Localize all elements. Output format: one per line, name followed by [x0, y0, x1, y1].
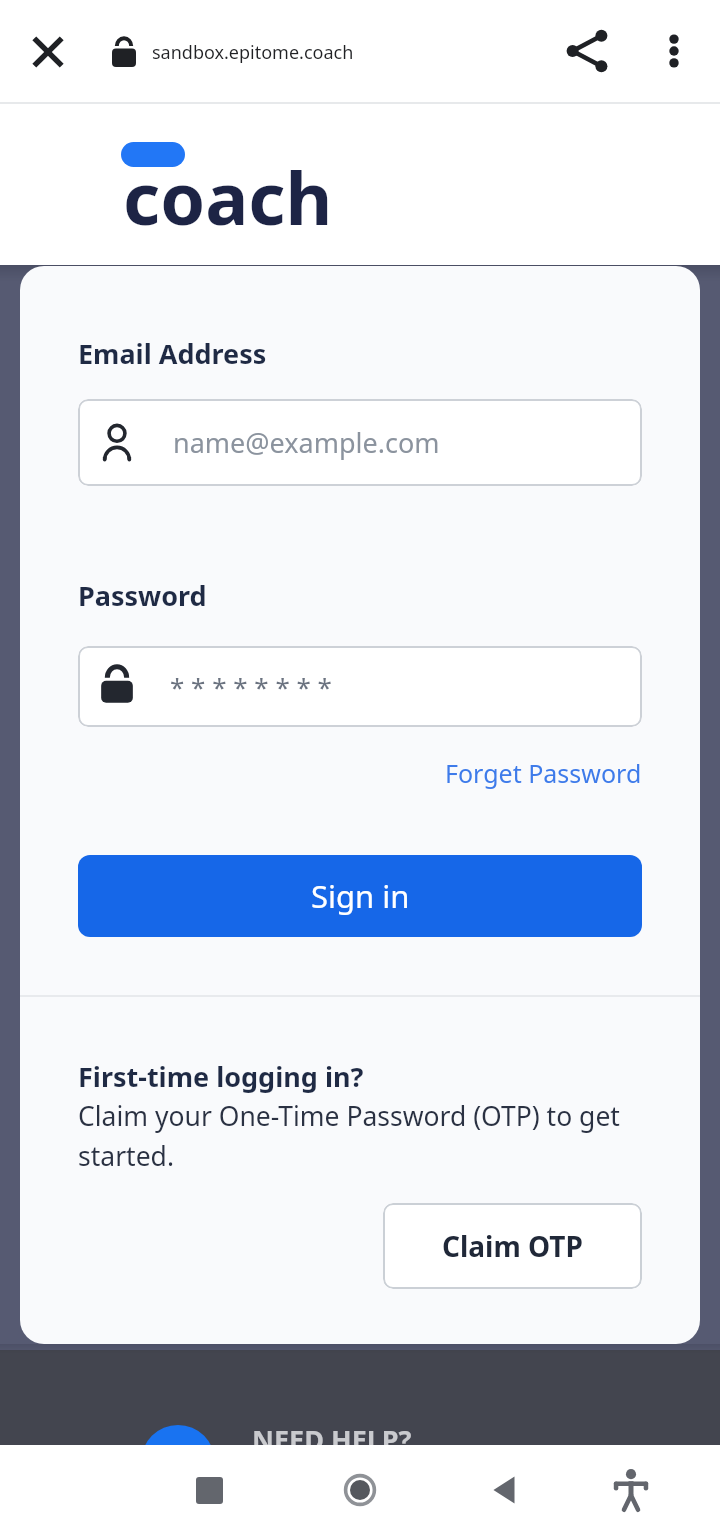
- staticText: sandbox.epitome.coach: [152, 40, 354, 65]
- staticText: coach: [123, 148, 333, 246]
- staticText: Email Address: [78, 335, 267, 372]
- staticText: First-time logging in?: [78, 1058, 364, 1095]
- button[interactable]: [648, 25, 700, 77]
- button[interactable]: name@example.com: [78, 399, 642, 486]
- button[interactable]: Sign in: [78, 855, 642, 937]
- button[interactable]: [334, 1464, 386, 1516]
- button[interactable]: [141, 1425, 215, 1499]
- button[interactable]: [22, 26, 74, 78]
- button[interactable]: [183, 1464, 235, 1516]
- staticText: Claim your One-Time Password (OTP) to ge…: [78, 1098, 620, 1134]
- button[interactable]: Forget Password: [445, 756, 642, 790]
- staticText: Claim OTP: [442, 1227, 583, 1265]
- staticText: name@example.com: [173, 424, 440, 461]
- staticText: NEED HELP?: [252, 1421, 412, 1458]
- button[interactable]: [605, 1464, 657, 1516]
- staticText: * * * * * * * *: [170, 669, 332, 704]
- button[interactable]: [479, 1464, 531, 1516]
- staticText: Forget Password: [445, 756, 642, 790]
- button[interactable]: Claim OTP: [383, 1203, 642, 1289]
- staticText: Password: [78, 577, 207, 614]
- button[interactable]: [561, 25, 613, 77]
- button[interactable]: * * * * * * * *: [78, 646, 642, 727]
- staticText: Sign in: [311, 875, 410, 917]
- staticText: started.: [78, 1138, 174, 1174]
